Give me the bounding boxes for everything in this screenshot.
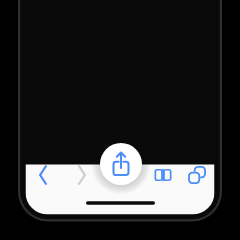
button[interactable]: Forward — [68, 161, 96, 189]
button[interactable]: Bookmarks — [149, 161, 177, 189]
button[interactable]: Back — [29, 161, 57, 189]
button[interactable]: Tabs — [183, 161, 211, 189]
button[interactable]: Share — [100, 143, 142, 185]
